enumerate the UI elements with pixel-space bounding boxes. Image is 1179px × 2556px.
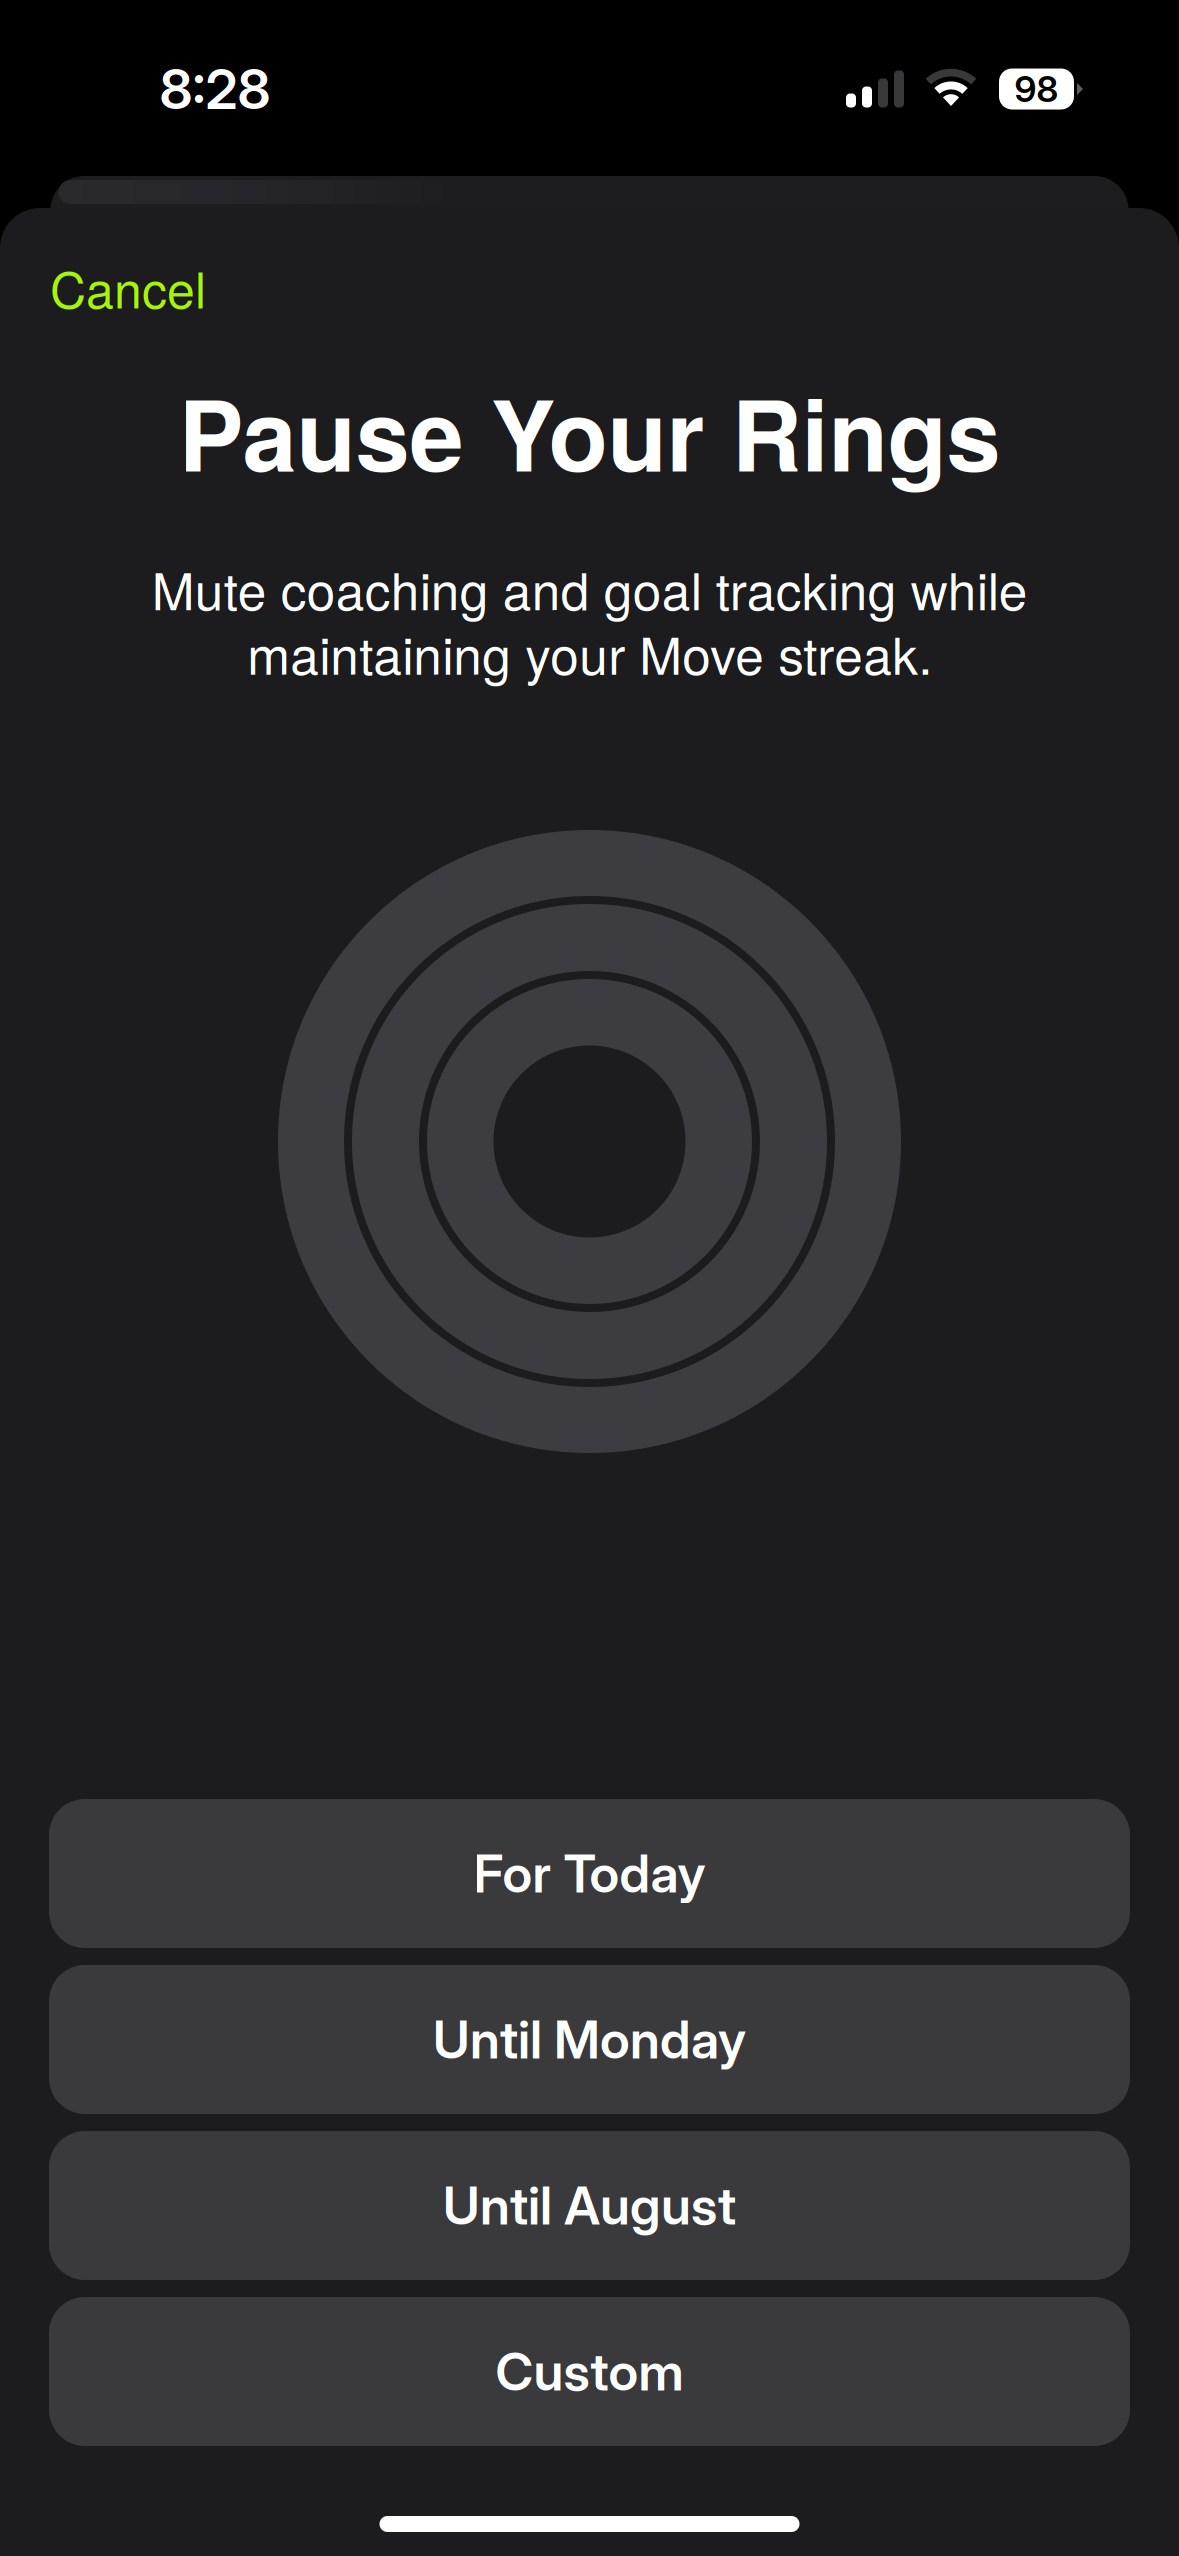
staticText: For Today	[473, 1842, 705, 1905]
staticText: 8:28	[159, 56, 270, 122]
button[interactable]: Custom	[49, 2297, 1130, 2446]
button[interactable]: For Today	[49, 1799, 1130, 1948]
button[interactable]: Until August	[49, 2131, 1130, 2280]
staticText: Pause Your Rings	[178, 362, 1000, 501]
staticText: Until August	[443, 2174, 736, 2237]
staticText: Until Monday	[433, 2008, 746, 2071]
staticText: Mute coaching and goal tracking while ma…	[151, 551, 1027, 689]
button[interactable]: Until Monday	[49, 1965, 1130, 2114]
staticText: Custom	[495, 2340, 683, 2403]
staticText: Cancel	[50, 251, 206, 323]
button[interactable]: Cancel	[0, 235, 246, 339]
staticText: 98	[1014, 67, 1058, 111]
